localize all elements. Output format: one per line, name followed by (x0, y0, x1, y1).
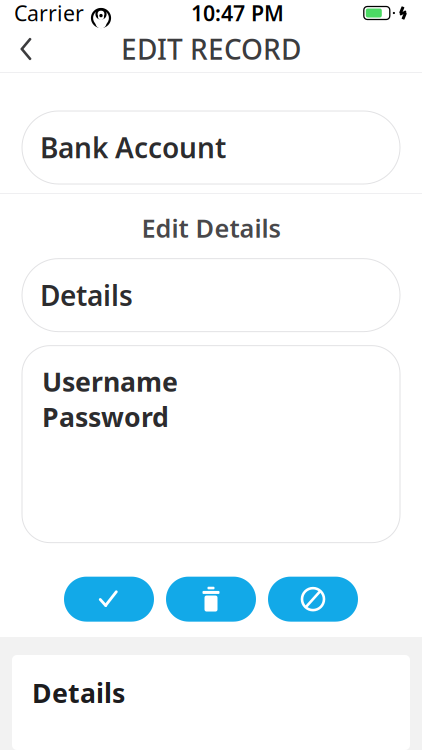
staticText: Bank Account (40, 129, 226, 166)
staticText: 10:47 PM (191, 0, 284, 27)
button[interactable]: Save (64, 577, 154, 622)
staticText: Details (32, 675, 125, 710)
button[interactable]: Username (22, 346, 400, 543)
staticText: Carrier (14, 0, 84, 27)
button[interactable]: Bank Account (22, 111, 400, 184)
button[interactable]: Details (22, 259, 400, 332)
staticText: Edit Details (141, 211, 280, 245)
button[interactable]: Delete (166, 577, 256, 622)
staticText: Password (42, 399, 169, 434)
staticText: EDIT RECORD (121, 30, 301, 68)
staticText: Details (40, 277, 133, 314)
button[interactable]: Back (4, 27, 48, 71)
staticText: Username (42, 364, 178, 399)
button[interactable]: Cancel (268, 577, 358, 622)
